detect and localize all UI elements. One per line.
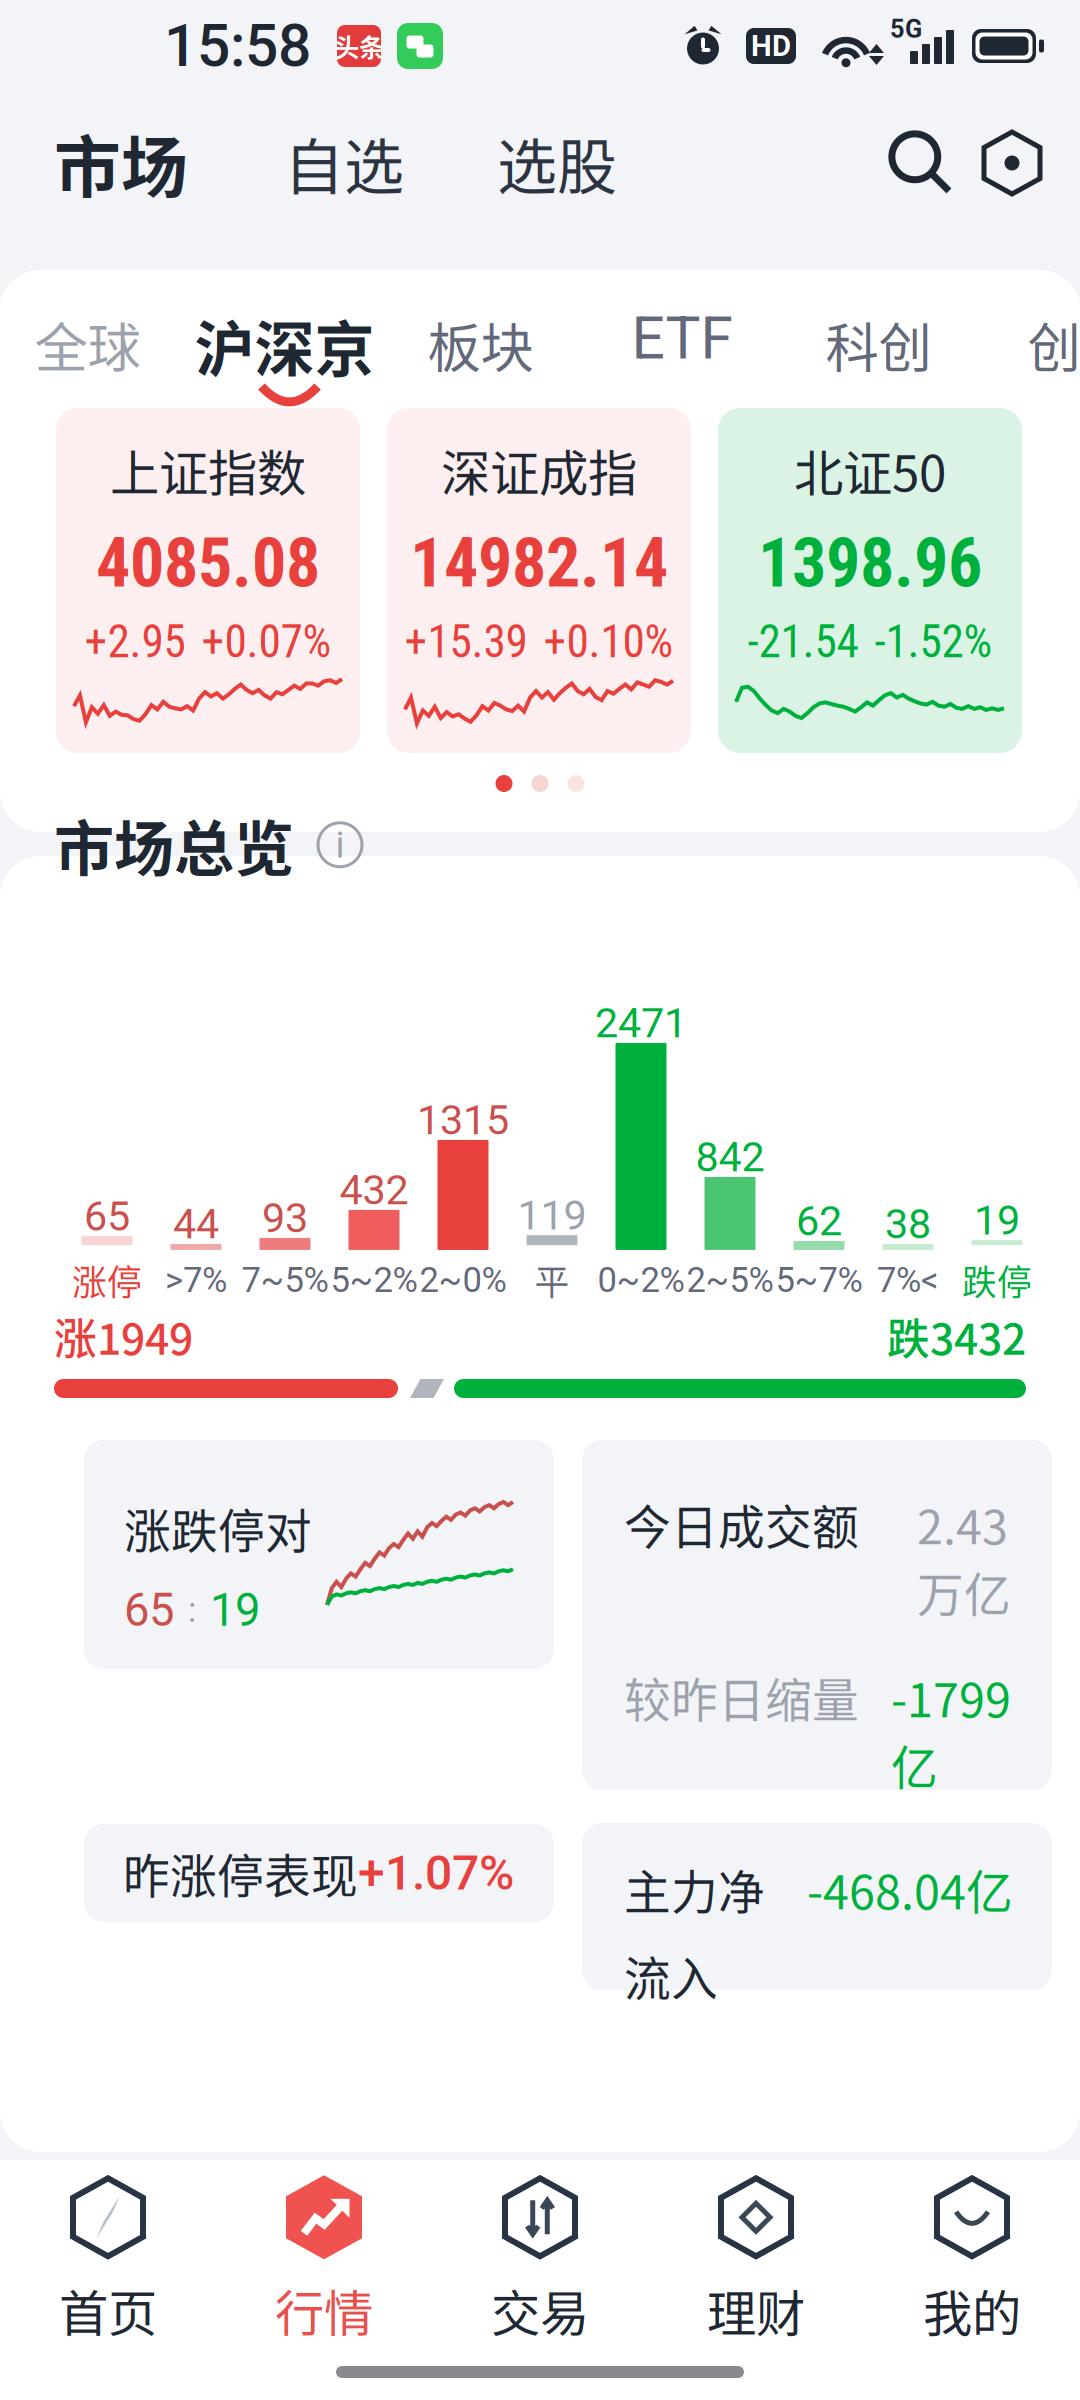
staticText: 较昨日缩量 [624,1663,859,1731]
button[interactable]: 说明 [316,821,364,869]
staticText: +0.10% [543,615,673,668]
button[interactable]: 我的 [864,2174,1080,2346]
button[interactable]: 上证指数 [56,408,360,753]
staticText: 深证成指 [441,434,637,505]
staticText: 2.43万亿 [917,1490,1011,1625]
button[interactable]: 搜索 [890,132,952,194]
staticText: 市场 [54,115,188,211]
staticText: +1.07% [358,1845,514,1901]
button[interactable]: 交易 [432,2174,648,2346]
button[interactable]: 深证成指 [387,408,691,753]
staticText: 涨停 [72,1255,142,1305]
staticText: i [335,823,344,867]
button[interactable]: 沪深京 [194,270,374,408]
staticText: -21.54 [747,615,858,668]
staticText: 5G [890,14,922,44]
button[interactable]: 昨涨停表现 [84,1824,554,1922]
staticText: 432 [339,1166,408,1214]
staticText: 创 [1027,306,1080,383]
button[interactable]: 涨跌停对 [84,1440,554,1669]
staticText: 今日成交额 [624,1490,859,1558]
staticText: 涨跌停对 [124,1494,312,1562]
staticText: ETF [631,304,732,373]
staticText: 跌停 [962,1255,1032,1305]
staticText: -1.52% [874,615,992,668]
staticText: 4085.08 [96,523,320,603]
staticText: 跌3432 [887,1305,1026,1367]
staticText: 62 [796,1197,842,1245]
button[interactable]: 科创 [825,270,931,408]
staticText: 2~5% [686,1260,773,1300]
staticText: 北证50 [794,434,946,505]
staticText: 首页 [59,2274,157,2346]
button[interactable]: 行情 [216,2174,432,2346]
staticText: : [188,1590,196,1630]
staticText: 平 [534,1255,569,1305]
staticText: 昨涨停表现 [123,1839,358,1907]
staticText: 119 [517,1191,586,1239]
staticText: 市场总览 [54,801,294,888]
staticText: -1799亿 [891,1663,1011,1798]
staticText: 19 [974,1196,1020,1244]
staticText: 全球 [34,306,140,383]
staticText: -468.04亿 [807,1855,1013,1923]
staticText: 19 [210,1584,260,1637]
button[interactable]: 自选 [284,120,404,206]
staticText: 5~2% [330,1260,417,1300]
staticText: 流入 [624,1942,718,2009]
staticText: 38 [885,1200,931,1248]
staticText: 1398.96 [758,523,982,603]
staticText: 7~5% [241,1260,328,1300]
staticText: 93 [262,1194,308,1242]
staticText: 涨1949 [54,1305,193,1367]
button[interactable]: 板块 [427,270,533,408]
staticText: 科创 [825,306,931,383]
button[interactable]: 主力净 [582,1823,1052,1990]
staticText: 行情 [275,2274,373,2346]
staticText: 选股 [497,120,617,206]
staticText: 2~0% [419,1260,506,1300]
staticText: 0~2% [597,1260,684,1300]
staticText: 主力净 [624,1855,765,1923]
staticText: 板块 [427,306,533,383]
staticText: 7%< [877,1260,939,1300]
staticText: 5~7% [775,1260,862,1300]
staticText: +0.07% [201,615,331,668]
staticText: 65 [84,1192,130,1240]
staticText: 沪深京 [194,302,374,389]
staticText: +2.95 [84,615,185,668]
button[interactable]: 今日成交额 [582,1440,1052,1790]
staticText: +15.39 [404,615,527,668]
staticText: 上证指数 [110,434,306,505]
staticText: 理财 [707,2274,805,2346]
staticText: 交易 [491,2274,589,2346]
button[interactable]: 设置 [984,132,1040,194]
staticText: 842 [695,1133,764,1181]
button[interactable]: 创 [1027,270,1080,408]
staticText: 1315 [417,1096,509,1144]
staticText: 头条 [334,28,384,64]
staticText: HD [751,29,791,63]
button[interactable]: 首页 [0,2174,216,2346]
button[interactable]: 全球 [34,270,140,408]
button[interactable]: 北证50 [718,408,1022,753]
staticText: 2471 [595,999,687,1047]
staticText: 44 [173,1200,219,1248]
button[interactable]: 市场 [54,115,188,211]
staticText: 65 [124,1584,174,1637]
staticText: >7% [165,1260,227,1300]
button[interactable]: 选股 [497,120,617,206]
staticText: 14982.14 [410,523,668,603]
button[interactable]: 理财 [648,2174,864,2346]
staticText: 自选 [284,120,404,206]
button[interactable]: ETF [631,270,732,408]
staticText: 我的 [923,2274,1021,2346]
staticText: 15:58 [164,12,311,80]
